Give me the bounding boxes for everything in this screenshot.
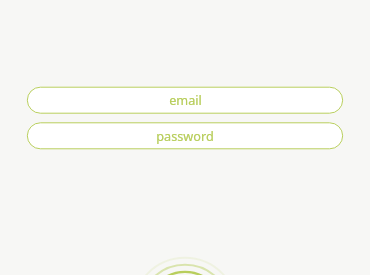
staticText: email — [169, 91, 202, 108]
button[interactable]: email — [27, 87, 343, 114]
button[interactable]: password — [27, 122, 343, 149]
staticText: password — [156, 127, 214, 144]
